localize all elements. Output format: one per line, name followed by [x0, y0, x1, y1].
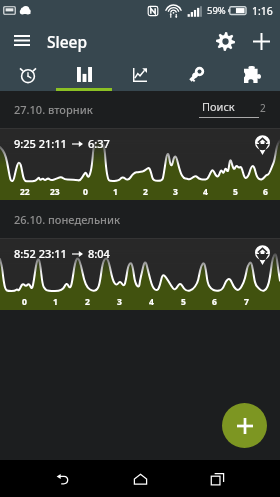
staticText: Sleep — [47, 31, 88, 52]
staticText: 5 — [233, 186, 238, 198]
button[interactable]: Add new alarm — [222, 403, 267, 448]
staticText: 8:52 23:11 — [14, 246, 67, 261]
button[interactable]: Add alarm — [242, 22, 280, 60]
button[interactable]: Settings — [206, 22, 244, 60]
button[interactable]: 9:25 21:11 — [0, 128, 280, 200]
staticText: 2 — [85, 296, 90, 308]
staticText: 1 — [53, 296, 58, 308]
staticText: 59% — [207, 4, 226, 17]
button[interactable]: Add-ons — [224, 60, 280, 91]
staticText: 6:37 — [88, 136, 110, 151]
staticText: 22 — [20, 186, 30, 198]
button[interactable]: Recent apps — [182, 460, 254, 497]
staticText: 6 — [263, 186, 268, 198]
staticText: Поиск — [202, 99, 235, 114]
staticText: 1:16 — [252, 4, 273, 18]
staticText: 0 — [83, 186, 88, 198]
button[interactable]: Поиск — [199, 95, 260, 125]
button[interactable]: Statistics — [56, 60, 112, 91]
staticText: 1 — [113, 186, 118, 198]
button[interactable]: 8:52 23:11 — [0, 238, 280, 310]
button[interactable]: Back — [26, 460, 98, 497]
staticText: 4 — [149, 296, 154, 308]
staticText: 7 — [244, 296, 249, 308]
staticText: 9:25 21:11 — [14, 136, 67, 151]
staticText: 26.10. понедельник — [14, 212, 121, 227]
staticText: 8:04 — [88, 246, 110, 261]
button[interactable]: Trends — [112, 60, 168, 91]
staticText: 0 — [22, 296, 27, 308]
staticText: 2 — [260, 101, 266, 115]
button[interactable]: Navigation menu — [2, 21, 42, 60]
staticText: 5 — [181, 296, 186, 308]
staticText: 3 — [117, 296, 122, 308]
button[interactable]: Noise recording — [168, 60, 224, 91]
staticText: 23 — [50, 186, 60, 198]
staticText: 2 — [143, 186, 148, 198]
staticText: 27.10. вторник — [14, 102, 93, 117]
staticText: 4 — [203, 186, 208, 198]
staticText: 3 — [173, 186, 178, 198]
button[interactable]: Home — [104, 460, 176, 497]
staticText: 6 — [212, 296, 217, 308]
button[interactable]: Alarms — [0, 60, 56, 91]
